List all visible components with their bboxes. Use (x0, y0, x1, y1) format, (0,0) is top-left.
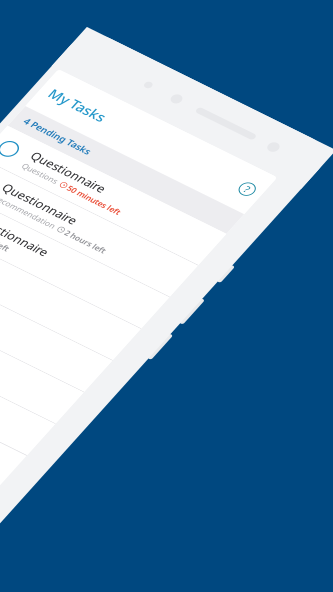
button[interactable]: Questionnaire (15, 428, 333, 512)
staticText: Recommendation (93, 391, 228, 412)
staticText: 50 minutes left (194, 305, 309, 326)
staticText: Questionnaire (93, 271, 254, 303)
button[interactable]: Questionnaire (15, 257, 333, 341)
staticText: Questions (93, 305, 170, 326)
staticText: 4 Pending Tasks (34, 218, 179, 243)
staticText: My Tasks (34, 136, 155, 173)
button[interactable]: Questionnaire (15, 342, 333, 426)
staticText: Questionnaire (93, 357, 254, 389)
